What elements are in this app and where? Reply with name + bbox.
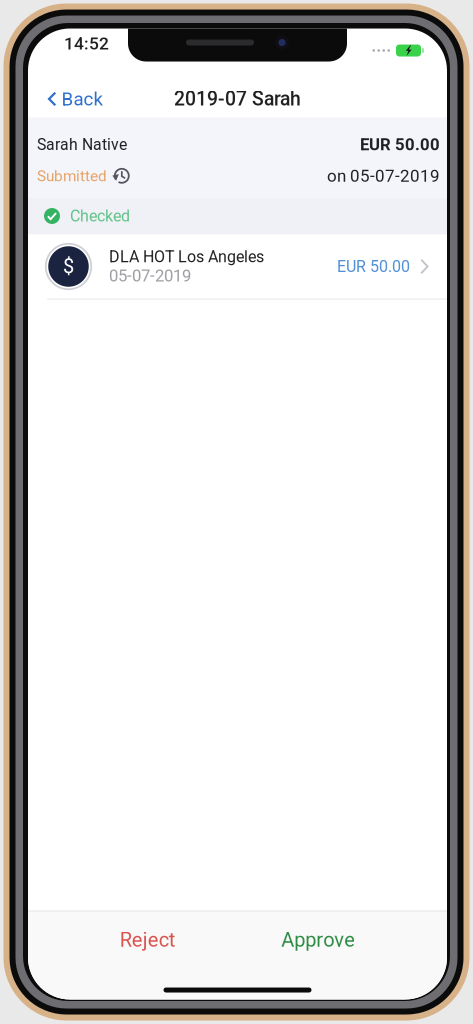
button[interactable]: Approve bbox=[267, 914, 369, 966]
staticText: 14:52 bbox=[64, 33, 109, 54]
staticText: EUR 50.00 bbox=[360, 135, 440, 154]
staticText: Back bbox=[61, 88, 102, 110]
staticText: Submitted bbox=[37, 167, 107, 185]
staticText: 2019-07 Sarah bbox=[174, 88, 301, 110]
staticText: EUR 50.00 bbox=[337, 257, 410, 276]
staticText: 05-07-2019 bbox=[109, 266, 191, 286]
staticText: Reject bbox=[120, 928, 176, 952]
staticText: Checked bbox=[70, 207, 130, 225]
button[interactable]: Back bbox=[28, 72, 118, 117]
button[interactable]: Reject bbox=[106, 914, 190, 966]
staticText: on 05-07-2019 bbox=[327, 166, 440, 186]
staticText: Approve bbox=[281, 928, 355, 952]
staticText: Sarah Native bbox=[37, 135, 127, 154]
staticText: $ bbox=[63, 255, 74, 278]
button[interactable]: $ bbox=[28, 234, 447, 299]
staticText: DLA HOT Los Angeles bbox=[109, 247, 264, 266]
